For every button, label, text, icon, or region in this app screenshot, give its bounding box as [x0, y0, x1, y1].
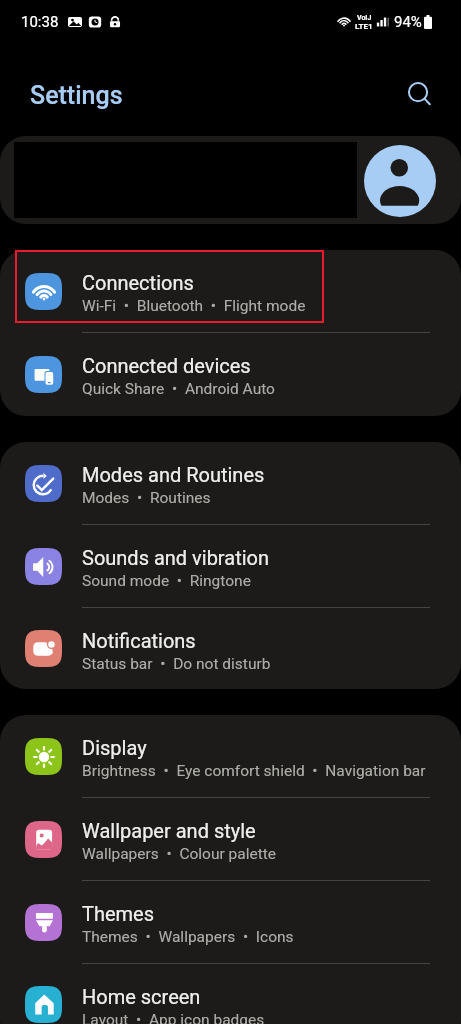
staticText: Wallpaper and style [82, 819, 256, 842]
staticText: 94% [394, 13, 422, 31]
button[interactable]: Search [401, 76, 439, 114]
staticText: Layout • App icon badges [82, 1011, 265, 1024]
staticText: Home screen [82, 985, 201, 1008]
staticText: 10:38 [21, 13, 59, 31]
button[interactable]: Home screen [0, 964, 461, 1024]
button[interactable]: Connected devices [0, 333, 461, 415]
staticText: Settings [30, 81, 123, 110]
staticText: Status bar • Do not disturb [82, 655, 271, 673]
button[interactable]: Sounds and vibration [0, 525, 461, 607]
staticText: Brightness • Eye comfort shield • Naviga… [82, 762, 426, 780]
staticText: Connected devices [82, 354, 251, 377]
staticText: Connections [82, 271, 194, 294]
staticText: LTE1 [355, 22, 373, 31]
staticText: VoIJ [357, 14, 372, 22]
staticText: Wi-Fi • Bluetooth • Flight mode [82, 297, 306, 315]
button[interactable]: Themes [0, 881, 461, 963]
staticText: Display [82, 736, 147, 759]
staticText: Modes • Routines [82, 489, 211, 507]
button[interactable] [0, 136, 461, 224]
button[interactable]: Notifications [0, 608, 461, 689]
button[interactable]: Wallpaper and style [0, 798, 461, 880]
button[interactable]: Display [0, 715, 461, 797]
staticText: Sound mode • Ringtone [82, 572, 251, 590]
staticText: Sounds and vibration [82, 546, 269, 569]
staticText: Themes • Wallpapers • Icons [82, 928, 294, 946]
button[interactable]: Connections [0, 250, 461, 332]
staticText: Modes and Routines [82, 463, 265, 486]
staticText: Quick Share • Android Auto [82, 380, 275, 398]
staticText: Notifications [82, 629, 196, 652]
button[interactable]: Modes and Routines [0, 442, 461, 524]
staticText: Wallpapers • Colour palette [82, 845, 277, 863]
staticText: Themes [82, 902, 155, 925]
